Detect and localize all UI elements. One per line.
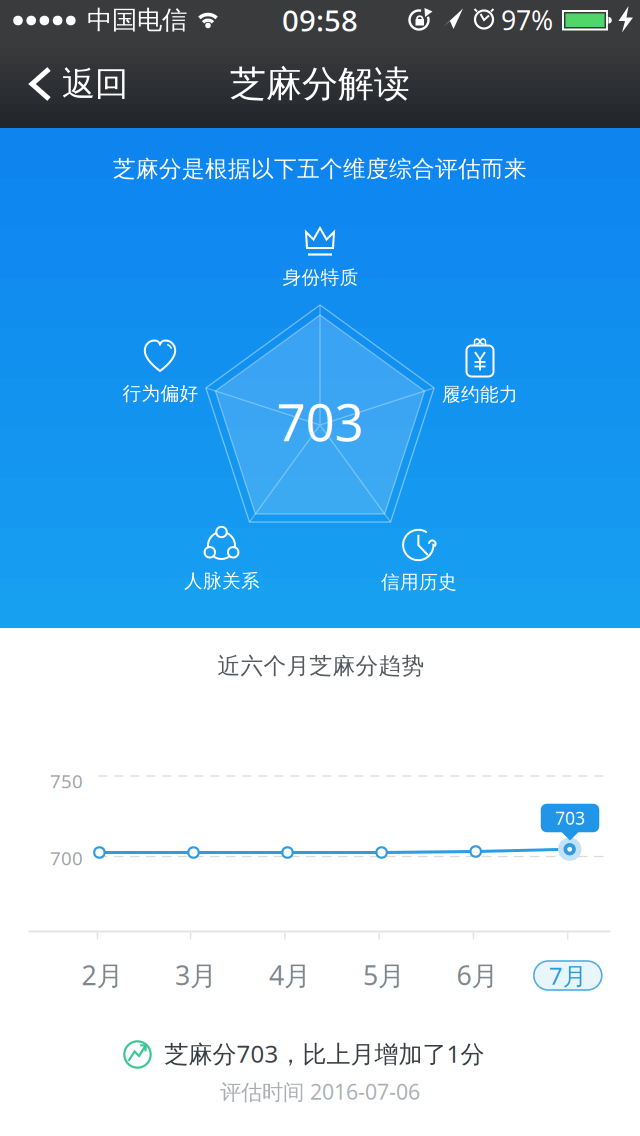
- staticText: 2月: [81, 957, 123, 993]
- staticText: 身份特质: [282, 266, 358, 289]
- button[interactable]: 5月: [352, 953, 416, 997]
- staticText: 芝麻分解读: [230, 62, 410, 106]
- staticText: 履约能力: [442, 383, 518, 406]
- staticText: 人脉关系: [184, 569, 260, 592]
- staticText: 返回: [62, 63, 128, 104]
- staticText: 09:58: [282, 0, 358, 39]
- button[interactable]: 2月: [70, 953, 134, 997]
- button[interactable]: 4月: [258, 953, 322, 997]
- button[interactable]: 6月: [445, 953, 509, 997]
- staticText: 芝麻分是根据以下五个维度综合评估而来: [113, 155, 527, 183]
- staticText: 评估时间 2016-07-06: [220, 1077, 420, 1106]
- staticText: 芝麻分703，比上月增加了1分: [164, 1038, 484, 1069]
- staticText: 703: [555, 806, 585, 829]
- staticText: 6月: [456, 957, 498, 993]
- staticText: 703: [276, 388, 363, 455]
- staticText: 97%: [501, 2, 553, 38]
- staticText: 4月: [269, 957, 311, 993]
- staticText: 7月: [549, 960, 587, 991]
- button[interactable]: 返回: [0, 40, 150, 128]
- staticText: 中国电信: [87, 4, 187, 35]
- button[interactable]: 7月: [534, 961, 602, 990]
- staticText: 700: [50, 846, 83, 870]
- staticText: 行为偏好: [122, 382, 198, 405]
- staticText: 5月: [363, 957, 405, 993]
- staticText: 近六个月芝麻分趋势: [217, 652, 424, 680]
- staticText: 3月: [175, 957, 217, 993]
- staticText: 750: [50, 769, 83, 793]
- button[interactable]: 3月: [164, 953, 228, 997]
- staticText: 信用历史: [381, 570, 457, 593]
